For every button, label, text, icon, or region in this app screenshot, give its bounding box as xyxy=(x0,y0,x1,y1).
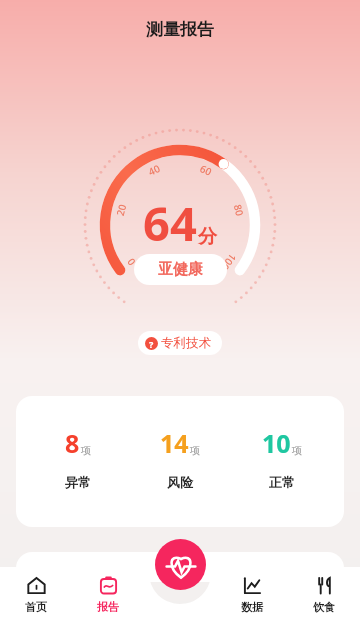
button[interactable]: 首页 xyxy=(0,567,72,623)
staticText: 报告 xyxy=(97,600,119,614)
button[interactable]: 亚健康 xyxy=(134,254,227,285)
staticText: 60 xyxy=(198,161,214,179)
staticText: 正常 xyxy=(269,474,295,490)
staticText: 0 xyxy=(124,255,138,269)
staticText: 饮食 xyxy=(313,600,335,614)
staticText: 64 xyxy=(143,191,197,255)
staticText: 风险 xyxy=(167,474,193,490)
button[interactable]: 8 xyxy=(16,396,344,527)
staticText: 10 xyxy=(262,426,291,460)
staticText: 14 xyxy=(160,426,189,460)
staticText: ? xyxy=(149,338,154,350)
staticText: 数据 xyxy=(241,600,263,614)
staticText: 专利技术 xyxy=(161,335,211,351)
staticText: 20 xyxy=(113,202,129,217)
button[interactable]: ? xyxy=(138,331,222,355)
staticText: 40 xyxy=(146,161,162,179)
staticText: 100 xyxy=(218,251,240,273)
staticText: 项 xyxy=(190,444,200,457)
staticText: 首页 xyxy=(25,600,47,614)
button[interactable]: 报告 xyxy=(72,567,144,623)
staticText: 亚健康 xyxy=(158,260,203,279)
staticText: 8 xyxy=(65,426,80,460)
button[interactable]: 14 xyxy=(140,426,220,490)
staticText: 测量报告 xyxy=(146,19,214,40)
staticText: 分 xyxy=(198,225,217,249)
staticText: 项 xyxy=(292,444,302,457)
button[interactable]: 10 xyxy=(242,426,322,490)
button[interactable]: 饮食 xyxy=(288,567,360,623)
staticText: 项 xyxy=(81,444,91,457)
button[interactable]: Start measurement xyxy=(155,539,206,590)
button[interactable]: 数据 xyxy=(216,567,288,623)
staticText: 异常 xyxy=(65,474,91,490)
button[interactable]: 8 xyxy=(38,426,118,490)
staticText: 80 xyxy=(231,202,247,217)
